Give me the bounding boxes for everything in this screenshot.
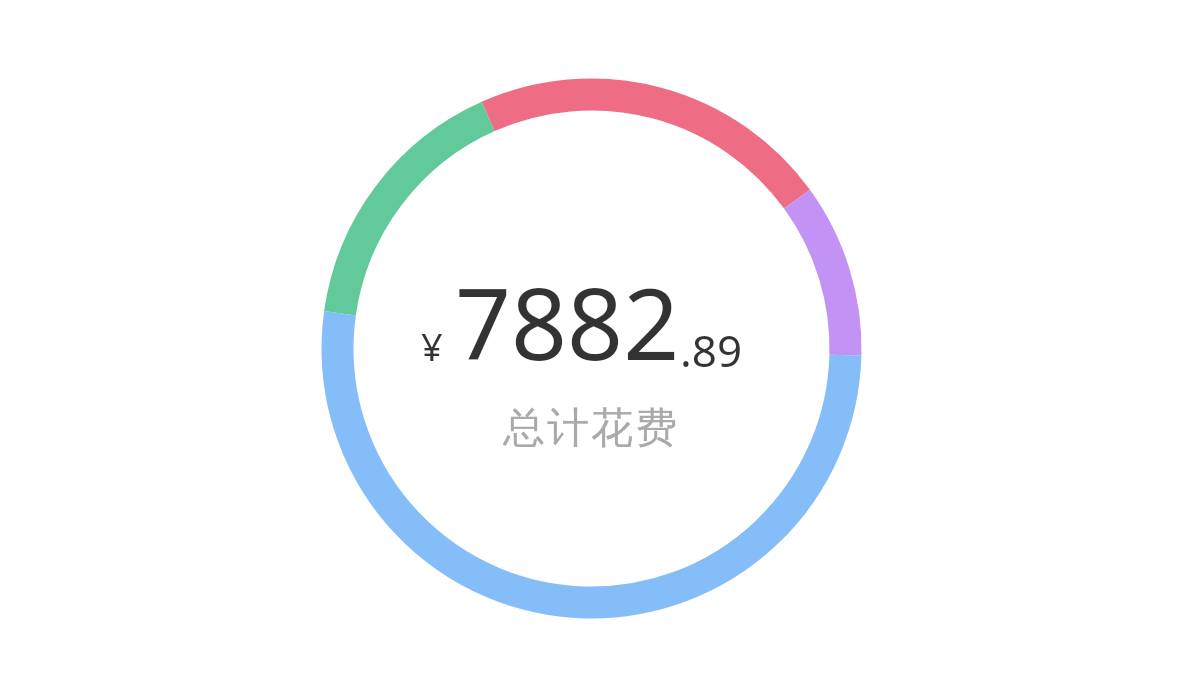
staticText: 7882 [455, 255, 680, 388]
staticText: 总计花费 [502, 402, 678, 455]
button[interactable]: Total spending donut chart [0, 0, 1179, 688]
staticText: ¥ [421, 320, 443, 372]
staticText: .89 [680, 320, 743, 380]
